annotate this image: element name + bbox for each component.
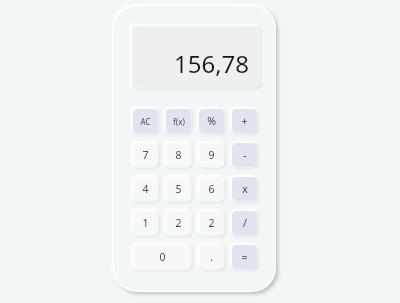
button[interactable]: 8	[166, 143, 191, 167]
staticText: 5	[175, 182, 182, 196]
staticText: .	[210, 250, 213, 264]
button[interactable]: f(x)	[166, 109, 191, 133]
button[interactable]: /	[232, 211, 257, 235]
staticText: +	[241, 114, 248, 128]
staticText: -	[243, 148, 247, 162]
button[interactable]: +	[232, 109, 257, 133]
button[interactable]: 7	[133, 143, 158, 167]
staticText: 2	[208, 216, 215, 230]
button[interactable]: 6	[199, 177, 224, 201]
staticText: 9	[208, 148, 215, 162]
staticText: %	[207, 114, 216, 128]
button[interactable]: x	[232, 177, 257, 201]
button[interactable]: %	[199, 109, 224, 133]
staticText: 156,78	[174, 47, 250, 80]
staticText: 8	[175, 148, 182, 162]
staticText: /	[243, 216, 247, 230]
button[interactable]: 0	[133, 245, 191, 269]
button[interactable]: .	[199, 245, 224, 269]
staticText: 4	[142, 182, 149, 196]
staticText: x	[242, 182, 248, 196]
staticText: =	[241, 250, 248, 264]
button[interactable]: 2	[166, 211, 191, 235]
button[interactable]: 2	[199, 211, 224, 235]
button[interactable]: 5	[166, 177, 191, 201]
button[interactable]: 4	[133, 177, 158, 201]
button[interactable]: 9	[199, 143, 224, 167]
staticText: f(x)	[173, 116, 185, 127]
button[interactable]: -	[232, 143, 257, 167]
staticText: 7	[142, 148, 149, 162]
staticText: 1	[142, 216, 149, 230]
staticText: 2	[175, 216, 182, 230]
staticText: 6	[208, 182, 215, 196]
staticText: AC	[140, 116, 151, 127]
button[interactable]: AC	[133, 109, 158, 133]
button[interactable]: =	[232, 245, 257, 269]
button[interactable]: 1	[133, 211, 158, 235]
staticText: 0	[159, 250, 166, 264]
